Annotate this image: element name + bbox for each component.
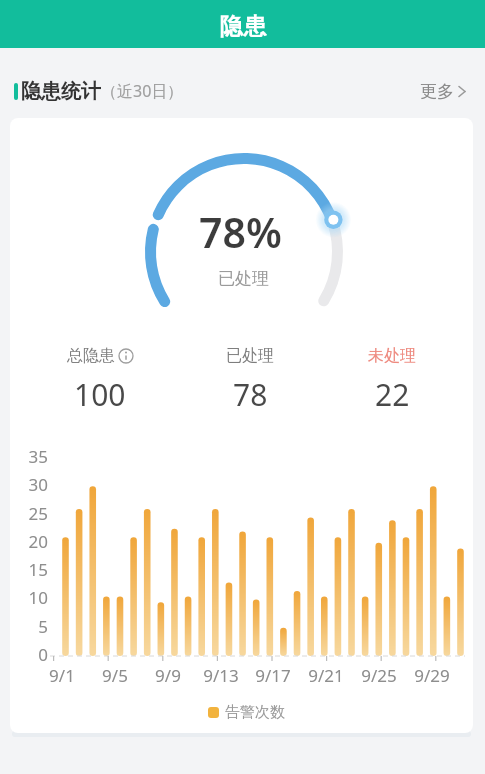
staticText: （近30日） xyxy=(101,80,184,102)
staticText: 5 xyxy=(18,615,48,638)
button[interactable]: 未处理 xyxy=(332,346,452,415)
staticText: 35 xyxy=(18,445,48,468)
staticText: 100 xyxy=(74,374,126,415)
staticText: 78 xyxy=(233,374,268,415)
staticText: 0 xyxy=(18,643,48,666)
staticText: 更多 xyxy=(420,81,454,102)
staticText: 15 xyxy=(18,558,48,581)
staticText: 已处理 xyxy=(12,268,473,289)
button[interactable]: 更多 xyxy=(420,81,466,102)
button[interactable]: 总隐患 xyxy=(40,346,160,415)
staticText: 隐患统计 xyxy=(21,79,101,104)
button[interactable]: 隐患 xyxy=(0,0,485,48)
staticText: 未处理 xyxy=(368,346,416,366)
staticText: 隐患 xyxy=(219,12,267,41)
staticText: 20 xyxy=(18,530,48,553)
staticText: 10 xyxy=(18,586,48,609)
staticText: 22 xyxy=(375,374,410,415)
staticText: 25 xyxy=(18,502,48,525)
staticText: 已处理 xyxy=(226,346,274,366)
staticText: 总隐患 xyxy=(67,346,115,366)
staticText: 9/13 xyxy=(199,664,243,687)
staticText: 9/29 xyxy=(410,664,454,687)
button[interactable]: 已处理 xyxy=(190,346,310,415)
staticText: 9/21 xyxy=(304,664,348,687)
staticText: 78% xyxy=(10,204,472,260)
staticText: 30 xyxy=(18,473,48,496)
staticText: 9/5 xyxy=(93,664,137,687)
staticText: 9/9 xyxy=(146,664,190,687)
staticText: 告警次数 xyxy=(225,703,285,722)
staticText: 9/17 xyxy=(251,664,295,687)
staticText: 9/1 xyxy=(40,664,84,687)
staticText: 9/25 xyxy=(357,664,401,687)
